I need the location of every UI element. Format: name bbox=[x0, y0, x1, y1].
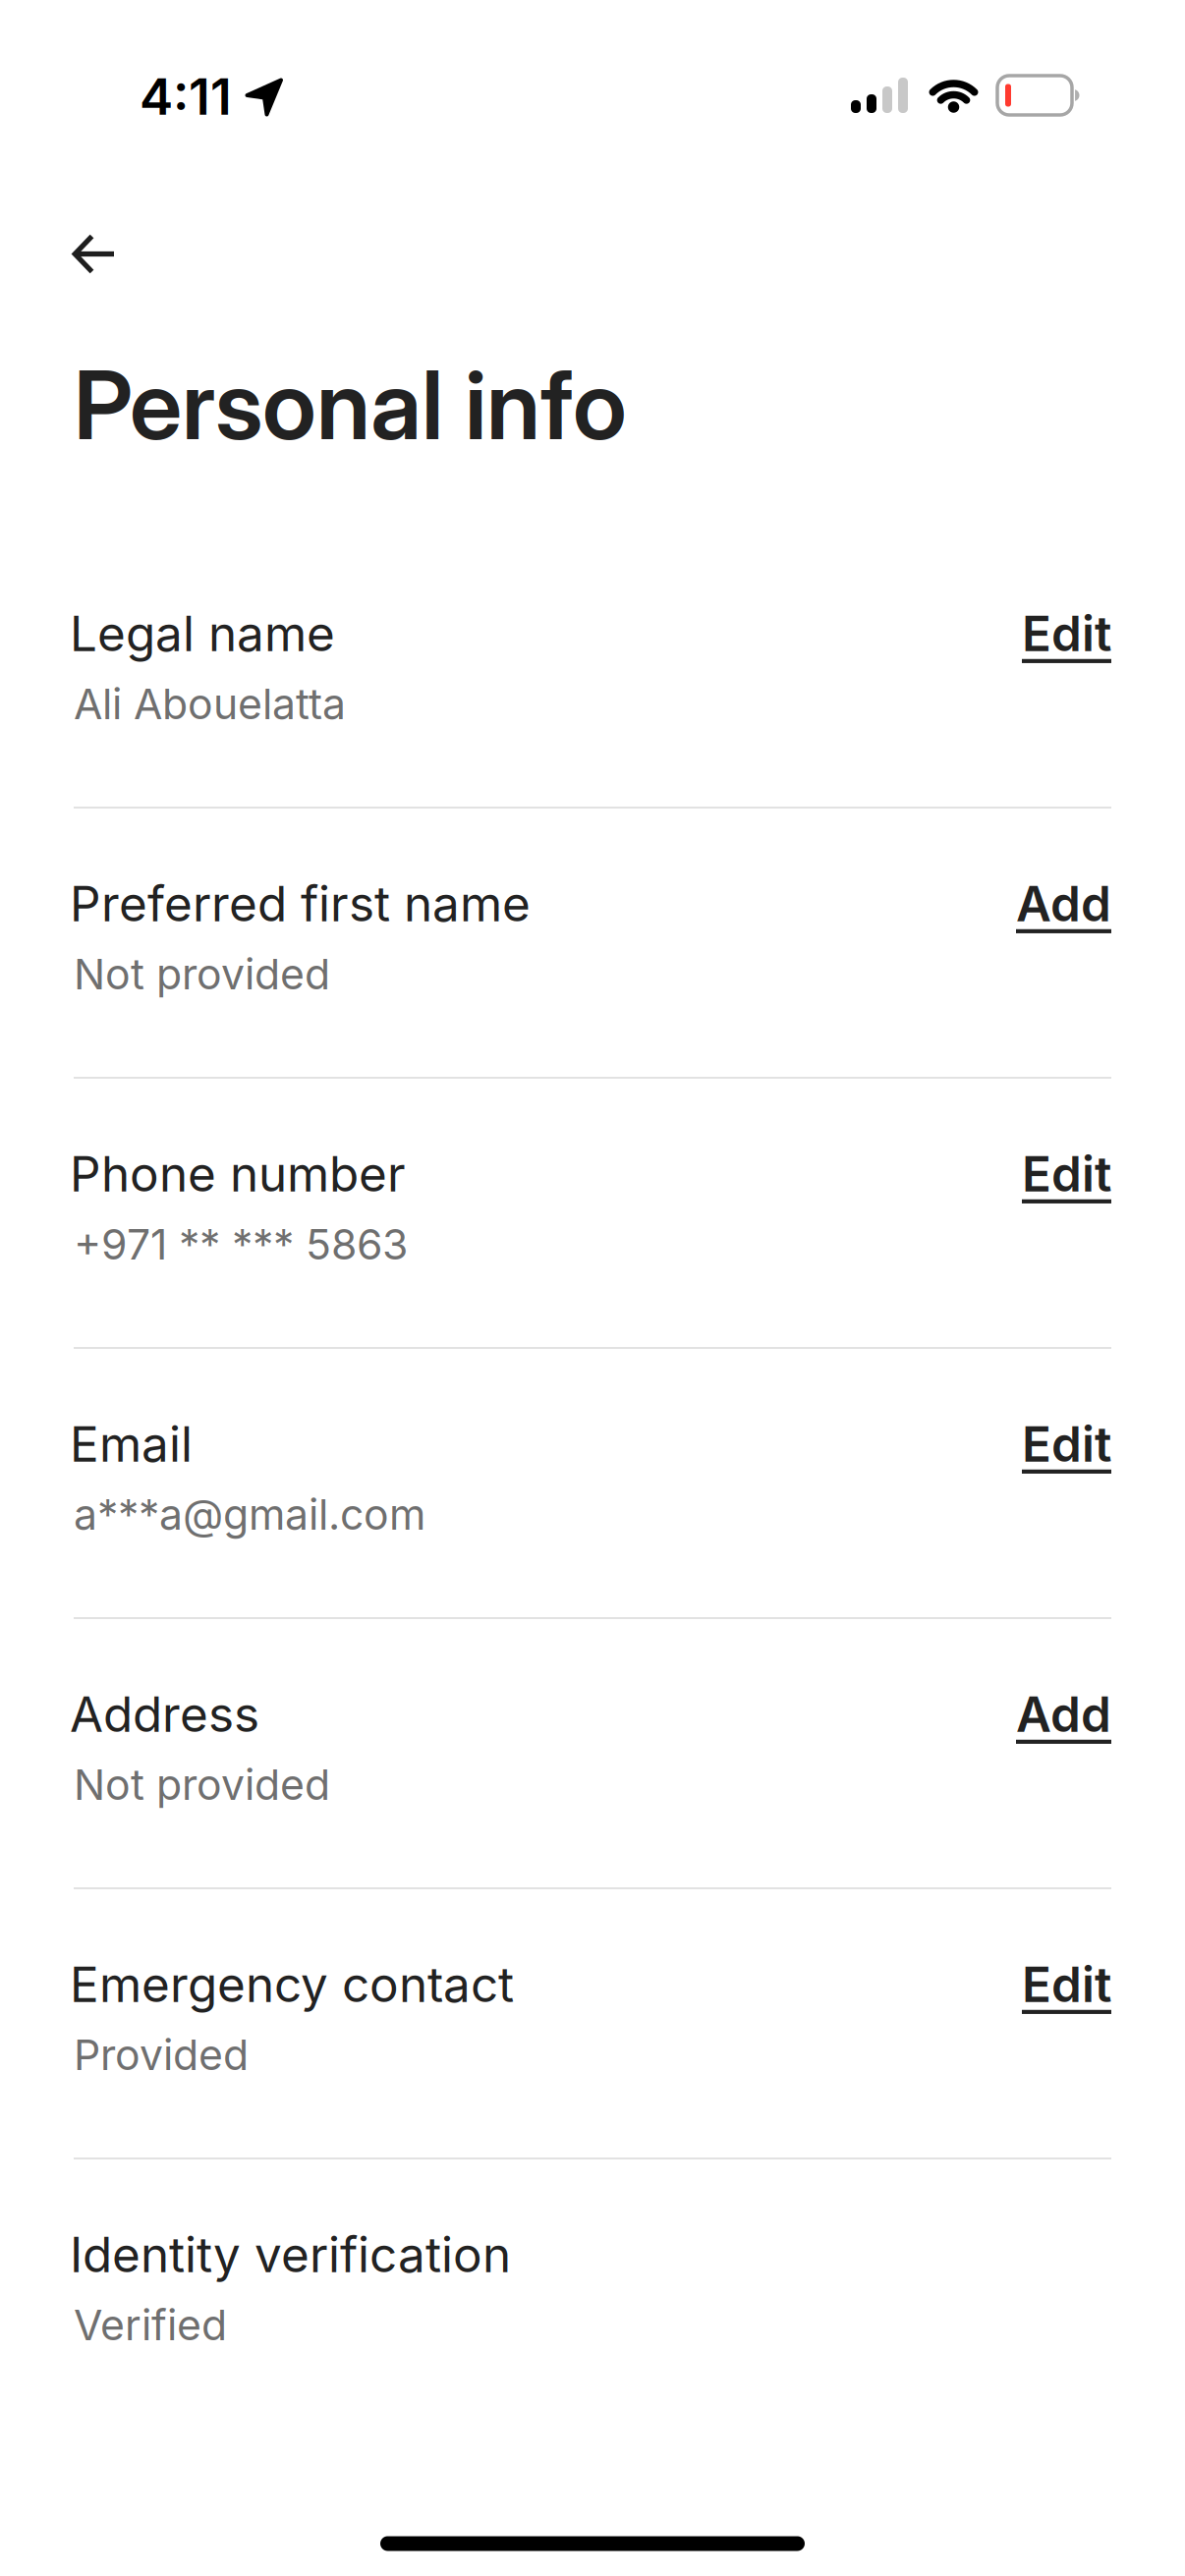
staticText: Preferred first name bbox=[70, 874, 531, 933]
staticText: Emergency contact bbox=[70, 1955, 514, 2014]
button[interactable]: Back bbox=[60, 223, 127, 286]
staticText: Legal name bbox=[70, 604, 335, 663]
staticText: a***a@gmail.com bbox=[74, 1489, 425, 1540]
staticText: Ali Abouelatta bbox=[74, 679, 346, 729]
button[interactable]: Add bbox=[1016, 874, 1111, 933]
staticText: Not provided bbox=[74, 949, 330, 999]
staticText: Edit bbox=[1022, 1415, 1111, 1473]
staticText: Edit bbox=[1022, 1145, 1111, 1203]
button[interactable]: Edit bbox=[1022, 1145, 1111, 1203]
staticText: Add bbox=[1016, 1685, 1111, 1744]
staticText: Verified bbox=[74, 2300, 227, 2350]
staticText: +971 ** *** 5863 bbox=[74, 1219, 408, 1270]
staticText: Identity verification bbox=[70, 2225, 511, 2284]
button[interactable]: Edit bbox=[1022, 1415, 1111, 1473]
staticText: Edit bbox=[1022, 604, 1111, 663]
staticText: Personal info bbox=[74, 348, 627, 462]
staticText: Email bbox=[70, 1415, 193, 1473]
staticText: 4:11 bbox=[140, 66, 232, 127]
staticText: Phone number bbox=[70, 1145, 406, 1203]
staticText: Provided bbox=[74, 2029, 249, 2080]
staticText: Not provided bbox=[74, 1759, 330, 1810]
button[interactable]: Add bbox=[1016, 1685, 1111, 1744]
button[interactable]: Edit bbox=[1022, 1955, 1111, 2014]
staticText: Add bbox=[1016, 874, 1111, 933]
staticText: Address bbox=[70, 1685, 259, 1744]
staticText: Edit bbox=[1022, 1955, 1111, 2014]
button[interactable]: Edit bbox=[1022, 604, 1111, 663]
